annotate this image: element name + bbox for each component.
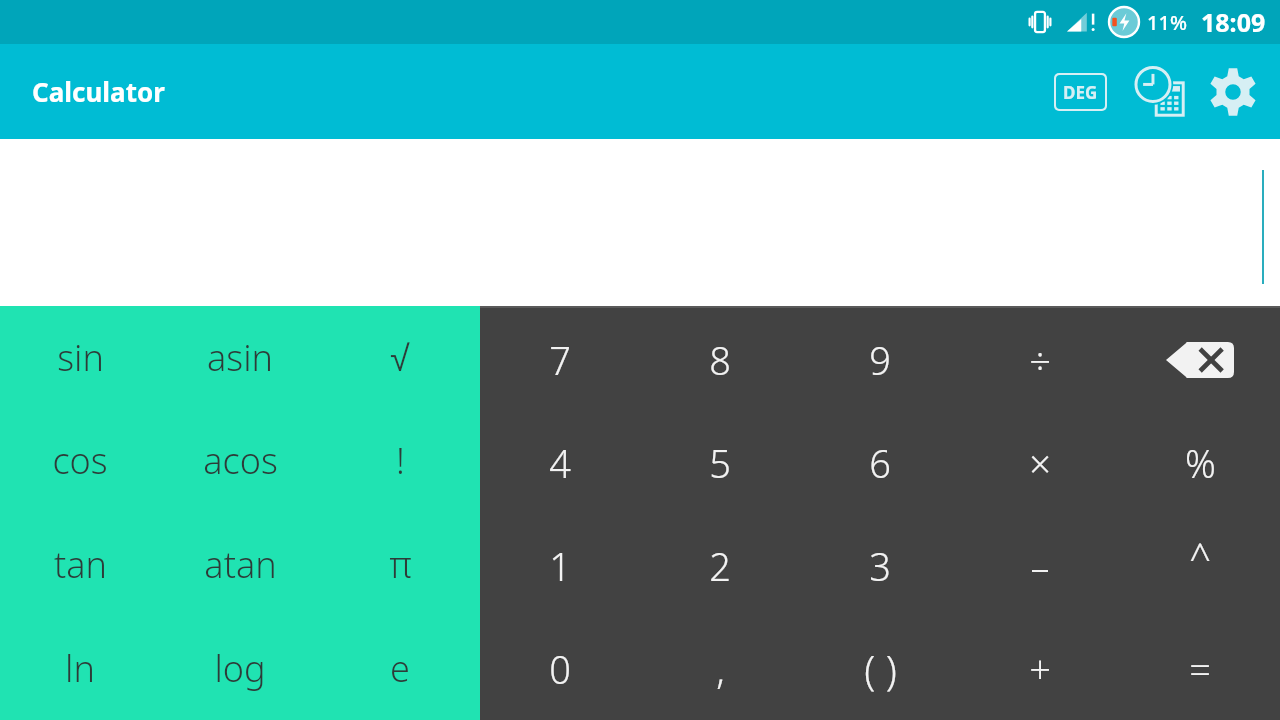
staticText: tan (54, 540, 107, 589)
staticText: ÷ (1029, 334, 1051, 386)
button[interactable]: √ (320, 306, 480, 409)
button[interactable]: Angle unit: degrees (1048, 66, 1112, 118)
button[interactable]: atan (160, 512, 320, 616)
button[interactable]: 1 (480, 514, 640, 617)
staticText: atan (204, 540, 277, 589)
staticText: Calculator (32, 74, 165, 109)
staticText: 8 (709, 334, 731, 386)
staticText: ^ (1189, 531, 1211, 583)
button[interactable]: tan (0, 512, 160, 616)
button[interactable]: – (960, 514, 1120, 617)
staticText: e (390, 644, 410, 693)
button[interactable]: π (320, 512, 480, 616)
button[interactable]: ( ) (800, 617, 960, 720)
button[interactable]: 3 (800, 514, 960, 617)
staticText: % (1185, 437, 1216, 489)
button[interactable]: 7 (480, 308, 640, 411)
staticText: , (716, 643, 725, 695)
staticText: – (1030, 540, 1050, 592)
staticText: √ (390, 338, 410, 378)
staticText: 5 (709, 437, 731, 489)
button[interactable]: sin (0, 306, 160, 409)
staticText: cos (52, 436, 108, 485)
staticText: 4 (549, 437, 571, 489)
button[interactable]: 4 (480, 411, 640, 514)
staticText: × (1029, 437, 1051, 489)
button[interactable]: × (960, 411, 1120, 514)
button[interactable]: = (1120, 617, 1280, 720)
button[interactable]: Backspace (1120, 308, 1280, 411)
button[interactable]: ln (0, 616, 160, 720)
staticText: 0 (549, 643, 571, 695)
button[interactable]: 0 (480, 617, 640, 720)
button[interactable]: Settings (1204, 63, 1262, 121)
staticText: asin (207, 333, 273, 382)
staticText: = (1189, 643, 1211, 695)
button[interactable]: ÷ (960, 308, 1120, 411)
staticText: 18:09 (1201, 5, 1266, 39)
staticText: ! (396, 436, 405, 485)
button[interactable]: 5 (640, 411, 800, 514)
button[interactable]: acos (160, 409, 320, 512)
staticText: 7 (549, 334, 571, 386)
staticText: π (389, 540, 412, 589)
staticText: 1 (549, 540, 571, 592)
staticText: ln (65, 644, 95, 693)
button[interactable]: ^ (1120, 514, 1280, 617)
button[interactable]: asin (160, 306, 320, 409)
staticText: 3 (869, 540, 891, 592)
button[interactable]: , (640, 617, 800, 720)
staticText: sin (57, 333, 104, 382)
button[interactable]: 8 (640, 308, 800, 411)
button[interactable]: cos (0, 409, 160, 512)
button[interactable]: History (1130, 62, 1190, 122)
staticText: 6 (869, 437, 891, 489)
staticText: 2 (709, 540, 731, 592)
staticText: acos (203, 436, 278, 485)
button[interactable]: log (160, 616, 320, 720)
staticText: + (1029, 643, 1051, 695)
button[interactable]: 9 (800, 308, 960, 411)
staticText: 11% (1147, 9, 1187, 36)
button[interactable]: % (1120, 411, 1280, 514)
staticText: ( ) (864, 642, 897, 696)
button[interactable]: + (960, 617, 1120, 720)
staticText: DEG (1063, 81, 1098, 104)
button[interactable]: ! (320, 409, 480, 512)
staticText: 9 (869, 334, 891, 386)
button[interactable]: e (320, 616, 480, 720)
button[interactable]: 2 (640, 514, 800, 617)
staticText: log (214, 644, 266, 693)
button[interactable]: 6 (800, 411, 960, 514)
